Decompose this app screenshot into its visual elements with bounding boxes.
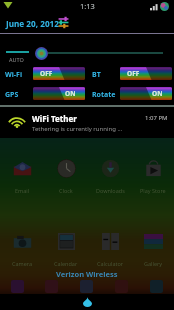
button[interactable]: Camera xyxy=(0,232,44,267)
staticText: 1:13 xyxy=(80,1,95,11)
button[interactable]: Brightness xyxy=(35,47,48,60)
staticText: Play Store xyxy=(140,187,166,194)
button[interactable]: App shortcut xyxy=(11,280,24,293)
staticText: AUTO xyxy=(9,56,24,63)
staticText: Calendar xyxy=(54,260,78,267)
staticText: Rotate xyxy=(92,90,120,100)
staticText: Verizon Wireless xyxy=(56,269,118,279)
staticText: Calculator xyxy=(97,260,124,267)
button[interactable]: Rotate xyxy=(87,85,174,98)
button[interactable]: Home xyxy=(79,294,95,310)
button[interactable]: Gallery xyxy=(132,232,174,267)
button[interactable]: Downloads xyxy=(88,159,132,194)
button[interactable]: BT xyxy=(87,65,174,78)
button[interactable]: Calculator xyxy=(88,232,132,267)
staticText: ON xyxy=(65,89,76,98)
staticText: Downloads xyxy=(96,187,125,194)
staticText: 1:07 PM xyxy=(145,114,168,122)
button[interactable]: Quick settings xyxy=(57,17,70,28)
staticText: GPS xyxy=(5,90,33,100)
staticText: Tethering is currently running ... xyxy=(32,125,123,133)
staticText: Camera xyxy=(12,260,33,267)
staticText: WiFi Tether xyxy=(32,113,77,124)
staticText: Clock xyxy=(59,187,73,194)
button[interactable]: Email xyxy=(0,159,44,194)
button[interactable]: App shortcut xyxy=(150,280,163,293)
staticText: June 20, 2012 xyxy=(6,18,59,29)
staticText: Gallery xyxy=(144,260,163,267)
button[interactable]: Wi-Fi xyxy=(0,65,87,78)
button[interactable]: Play Store xyxy=(132,159,174,194)
button[interactable]: GPS xyxy=(0,85,87,98)
staticText: Email xyxy=(15,187,30,194)
staticText: ON xyxy=(152,89,163,98)
button[interactable]: Clock xyxy=(44,159,88,194)
button[interactable]: App shortcut xyxy=(80,280,93,293)
button[interactable]: WiFi Tether xyxy=(0,107,174,138)
staticText: OFF xyxy=(40,69,53,78)
staticText: Wi-Fi xyxy=(5,70,33,80)
button[interactable]: Calendar xyxy=(44,232,88,267)
staticText: BT xyxy=(92,70,120,80)
staticText: OFF xyxy=(127,69,140,78)
